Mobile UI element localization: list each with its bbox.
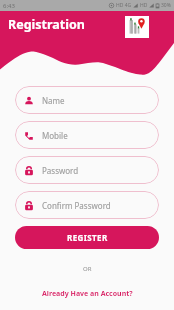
staticText: OR [83, 265, 92, 273]
staticText: Already Have an Account? [42, 289, 133, 299]
staticText: REGISTER [67, 232, 108, 243]
button[interactable]: Password [15, 156, 159, 184]
staticText: HD [140, 2, 148, 9]
staticText: Mobile [42, 130, 68, 141]
staticText: Confirm Password [42, 200, 111, 211]
staticText: Name [42, 95, 65, 106]
staticText: HD 4G [116, 2, 132, 9]
button[interactable]: REGISTER [15, 226, 159, 249]
button[interactable]: Name [15, 86, 159, 114]
staticText: 6:43 [3, 2, 15, 10]
button[interactable]: Confirm Password [15, 191, 159, 219]
staticText: 30% [161, 2, 171, 9]
staticText: Password [42, 165, 79, 176]
button[interactable]: Already Have an Account? [0, 289, 174, 299]
button[interactable]: Mobile [15, 121, 159, 149]
staticText: Registration [8, 16, 85, 33]
